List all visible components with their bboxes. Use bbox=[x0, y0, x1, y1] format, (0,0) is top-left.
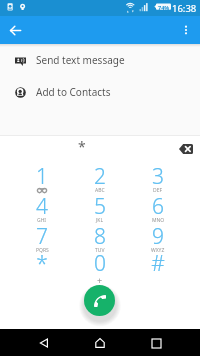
staticText: 1 bbox=[36, 162, 48, 191]
button[interactable]: Send text message bbox=[0, 47, 200, 73]
staticText: # bbox=[151, 249, 165, 278]
button[interactable]: 6 bbox=[129, 196, 187, 228]
button[interactable]: 8 bbox=[71, 226, 129, 258]
staticText: TUV bbox=[95, 247, 105, 254]
staticText: 2 bbox=[94, 162, 106, 191]
staticText: JKL bbox=[96, 217, 104, 224]
button[interactable]: 7 bbox=[13, 226, 71, 258]
staticText: * bbox=[36, 249, 48, 278]
button[interactable]: 1 bbox=[13, 166, 71, 198]
button[interactable]: More options bbox=[174, 18, 198, 42]
staticText: 74% bbox=[158, 4, 170, 11]
staticText: ABC bbox=[95, 187, 105, 194]
staticText: PQRS bbox=[36, 247, 49, 254]
staticText: + bbox=[97, 274, 103, 286]
staticText: 3 bbox=[152, 162, 164, 191]
staticText: 5 bbox=[94, 192, 106, 221]
button[interactable]: Back bbox=[32, 331, 56, 355]
staticText: 8 bbox=[94, 222, 106, 251]
button[interactable]: Add to Contacts bbox=[0, 76, 200, 108]
button[interactable]: 9 bbox=[129, 226, 187, 258]
button[interactable]: Backspace bbox=[175, 138, 196, 159]
staticText: 0 bbox=[94, 249, 106, 278]
button[interactable]: 3 bbox=[129, 166, 187, 198]
button[interactable]: # bbox=[129, 253, 187, 285]
button[interactable]: 4 bbox=[13, 196, 71, 228]
button[interactable]: 2 bbox=[71, 166, 129, 198]
staticText: * bbox=[78, 137, 86, 156]
staticText: Add to Contacts bbox=[36, 85, 111, 99]
staticText: 4 bbox=[36, 192, 48, 221]
staticText: 9 bbox=[152, 222, 164, 251]
staticText: Send text message bbox=[36, 53, 125, 67]
button[interactable]: * bbox=[13, 253, 71, 285]
staticText: 6 bbox=[152, 192, 164, 221]
button[interactable]: Home bbox=[88, 331, 112, 355]
button[interactable]: Recent apps bbox=[144, 331, 168, 355]
button[interactable]: 5 bbox=[71, 196, 129, 228]
staticText: 7 bbox=[36, 222, 48, 251]
staticText: 16:38 bbox=[172, 2, 197, 15]
button[interactable]: 0 bbox=[71, 253, 129, 285]
button[interactable]: Back bbox=[3, 18, 27, 42]
staticText: WXYZ bbox=[151, 247, 165, 254]
staticText: DEF bbox=[153, 187, 163, 194]
staticText: MNO bbox=[152, 217, 165, 224]
button[interactable]: Call bbox=[84, 285, 115, 316]
staticText: GHI bbox=[37, 217, 47, 224]
